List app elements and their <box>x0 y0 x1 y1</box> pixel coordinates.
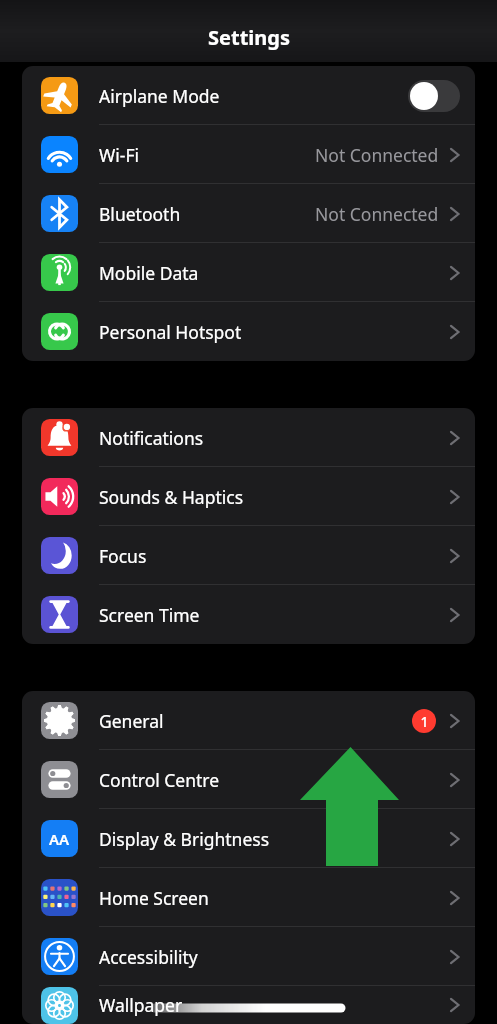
staticText: Mobile Data <box>99 261 199 285</box>
button[interactable]: Focus <box>22 526 475 585</box>
staticText: Wallpaper <box>99 993 183 1017</box>
button[interactable]: Wallpaper <box>22 986 475 1024</box>
button[interactable]: Sounds & Haptics <box>22 467 475 526</box>
staticText: Sounds & Haptics <box>99 485 244 509</box>
staticText: Display & Brightness <box>99 827 270 851</box>
button[interactable]: Control Centre <box>22 750 475 809</box>
staticText: General <box>99 709 164 733</box>
staticText: Focus <box>99 544 147 568</box>
button[interactable]: Notifications <box>22 408 475 467</box>
button[interactable]: Mobile Data <box>22 243 475 302</box>
staticText: Wi-Fi <box>99 143 140 167</box>
staticText: Bluetooth <box>99 202 181 226</box>
staticText: Settings <box>208 24 290 51</box>
button[interactable]: Personal Hotspot <box>22 302 475 361</box>
staticText: Accessibility <box>99 945 198 969</box>
staticText: Airplane Mode <box>99 84 220 108</box>
staticText: Screen Time <box>99 603 200 627</box>
button[interactable]: Airplane Mode <box>22 66 475 125</box>
button[interactable]: Screen Time <box>22 585 475 644</box>
button[interactable]: Accessibility <box>22 927 475 986</box>
button[interactable]: Bluetooth <box>22 184 475 243</box>
staticText: 1 <box>420 712 429 731</box>
staticText: Home Screen <box>99 886 209 910</box>
button[interactable]: Home Screen <box>22 868 475 927</box>
button[interactable]: General <box>22 691 475 750</box>
staticText: Personal Hotspot <box>99 320 242 344</box>
staticText: Not Connected <box>315 143 439 167</box>
staticText: Control Centre <box>99 768 220 792</box>
button[interactable]: AA <box>22 809 475 868</box>
staticText: AA <box>49 829 70 849</box>
other: Airplane Mode toggle <box>408 80 460 112</box>
staticText: Notifications <box>99 426 204 450</box>
button[interactable]: Wi-Fi <box>22 125 475 184</box>
staticText: Not Connected <box>315 202 439 226</box>
